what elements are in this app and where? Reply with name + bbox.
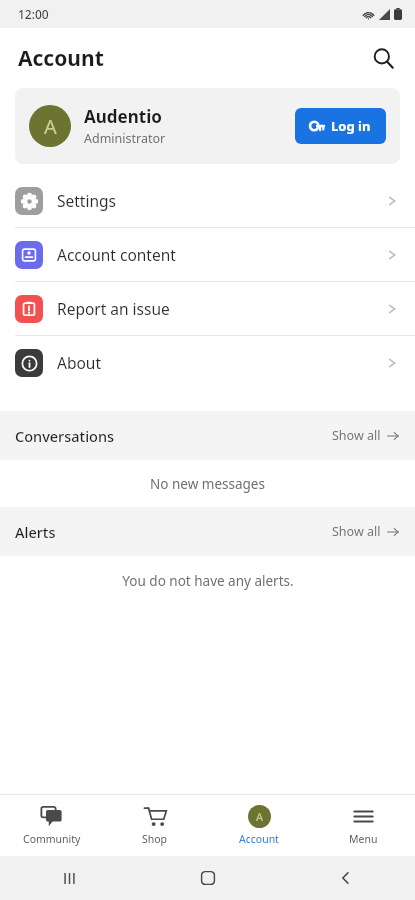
- staticText: Show all: [332, 523, 381, 540]
- button[interactable]: Shop: [103, 794, 207, 856]
- staticText: Report an issue: [57, 298, 385, 319]
- staticText: Administrator: [84, 130, 166, 147]
- staticText: About: [57, 352, 385, 373]
- staticText: Account: [18, 44, 104, 73]
- staticText: Menu: [349, 832, 378, 846]
- button[interactable]: Alerts: [0, 507, 415, 556]
- button[interactable]: Conversations: [0, 411, 415, 460]
- staticText: Alerts: [15, 522, 332, 542]
- button[interactable]: Menu: [311, 794, 415, 856]
- staticText: Shop: [142, 832, 168, 846]
- staticText: Log in: [331, 117, 371, 135]
- staticText: 12:00: [18, 6, 49, 22]
- button[interactable]: Log in: [295, 108, 386, 144]
- button[interactable]: Settings: [0, 174, 415, 227]
- button[interactable]: About: [0, 336, 415, 389]
- staticText: Audentio: [84, 105, 162, 128]
- button[interactable]: Report an issue: [0, 282, 415, 335]
- staticText: Account: [239, 832, 279, 846]
- staticText: No new messages: [150, 475, 265, 493]
- button[interactable]: Account content: [0, 228, 415, 281]
- button[interactable]: Community: [0, 794, 103, 856]
- button[interactable]: Search: [359, 34, 407, 82]
- staticText: Account content: [57, 244, 385, 265]
- staticText: Show all: [332, 427, 381, 444]
- staticText: Conversations: [15, 426, 332, 446]
- staticText: Settings: [57, 190, 385, 211]
- staticText: You do not have any alerts.: [122, 572, 294, 590]
- button[interactable]: A: [15, 88, 400, 164]
- staticText: A: [256, 809, 264, 824]
- staticText: Community: [23, 832, 81, 846]
- staticText: A: [44, 113, 57, 140]
- button[interactable]: A: [207, 794, 311, 856]
